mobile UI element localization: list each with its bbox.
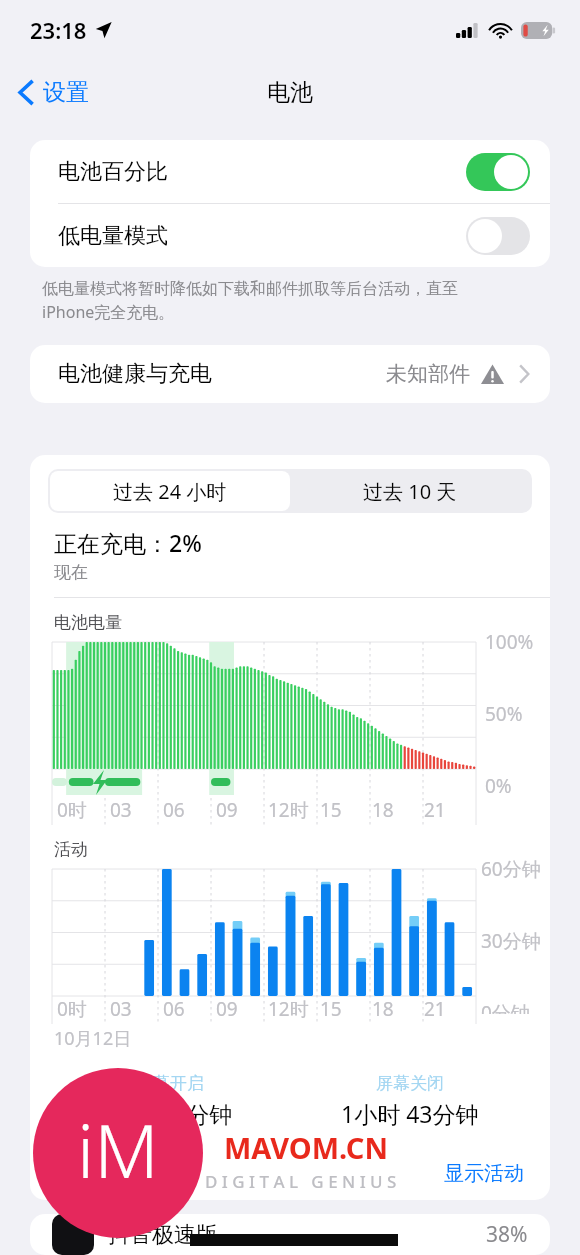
other: Battery charging 2 percent [521, 22, 556, 39]
staticText: 21 [424, 797, 446, 823]
staticText: 0% [485, 773, 512, 799]
staticText: 电池 [267, 78, 313, 107]
staticText: 38% [486, 1220, 528, 1249]
staticText: 9小时 8分钟 [108, 1098, 233, 1129]
staticText: 100% [485, 629, 534, 655]
staticText: 低电量模式将暂时降低如下载和邮件抓取等后台活动，直至 iPhone完全充电。 [42, 279, 458, 323]
staticText: 显示活动 [444, 1161, 524, 1186]
staticText: 活动 [54, 839, 88, 860]
staticText: 09 [216, 996, 238, 1022]
staticText: 15 [320, 797, 342, 823]
staticText: 06 [163, 996, 185, 1022]
staticText: MAVOM.CN [224, 1128, 388, 1167]
staticText: 现在 [54, 562, 88, 583]
button[interactable]: 设置 [0, 70, 101, 115]
button[interactable]: 过去 10 天 [290, 471, 530, 511]
staticText: 60分钟 [481, 856, 541, 882]
staticText: 过去 10 天 [363, 478, 457, 505]
staticText: D I G I T A L G E N I U S [205, 1170, 397, 1193]
staticText: 50% [485, 701, 523, 727]
staticText: 10月12日 [54, 1026, 132, 1051]
staticText: 18 [372, 996, 394, 1022]
staticText: 屏幕关闭 [376, 1073, 444, 1094]
button[interactable]: 显示活动 [438, 1155, 530, 1192]
staticText: 03 [110, 996, 132, 1022]
button[interactable]: 低电量模式 [30, 204, 550, 267]
staticText: 0时 [57, 797, 87, 823]
staticText: 30分钟 [481, 928, 541, 954]
staticText: 09 [216, 797, 238, 823]
staticText: 未知部件 [386, 361, 470, 387]
staticText: 23:18 [30, 15, 87, 45]
staticText: 1小时 43分钟 [341, 1098, 479, 1129]
staticText: 0分钟 [481, 1000, 530, 1014]
staticText: 屏幕开启 [136, 1073, 204, 1094]
staticText: 低电量模式 [58, 222, 168, 250]
button[interactable]: 电池健康与充电 [30, 345, 550, 403]
staticText: 0时 [57, 996, 87, 1022]
staticText: iM [77, 1099, 159, 1200]
button[interactable]: 抖音极速版 [30, 1214, 550, 1255]
button[interactable]: 过去 24 小时 [50, 471, 290, 511]
staticText: 15 [320, 996, 342, 1022]
staticText: 抖音极速版 [108, 1221, 218, 1249]
staticText: 正在充电：2% [54, 527, 202, 558]
staticText: 设置 [43, 78, 89, 107]
staticText: 21 [424, 996, 446, 1022]
button[interactable]: 电池百分比 [30, 140, 550, 203]
staticText: 过去 24 小时 [113, 478, 227, 505]
staticText: 18 [372, 797, 394, 823]
staticText: 12时 [268, 996, 309, 1022]
staticText: 电池电量 [54, 612, 122, 633]
staticText: 电池健康与充电 [58, 360, 212, 388]
staticText: 03 [110, 797, 132, 823]
staticText: 12时 [268, 797, 309, 823]
staticText: 06 [163, 797, 185, 823]
staticText: 电池百分比 [58, 158, 168, 186]
